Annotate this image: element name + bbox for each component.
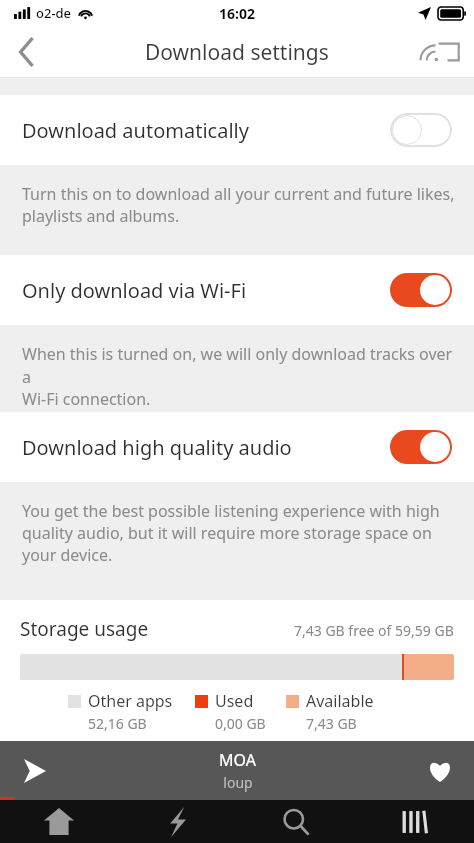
button[interactable]: Feed [118,800,236,843]
staticText: Download high quality audio [22,434,390,461]
staticText: MOA [219,749,256,771]
staticText: 52,16 GB [88,714,147,733]
staticText: 7,43 GB free of 59,59 GB [294,621,454,640]
button[interactable] [390,273,452,307]
button[interactable]: Play [0,741,474,800]
button[interactable]: Download automatically [0,95,474,165]
staticText: Download automatically [22,117,390,144]
button[interactable]: Cast [420,26,474,78]
staticText: 7,43 GB [306,714,357,733]
staticText: quality audio, but it will require more … [22,522,432,544]
staticText: 16:02 [219,4,255,23]
button[interactable]: Play [18,754,52,788]
button[interactable] [390,430,452,464]
staticText: loup [223,773,253,792]
staticText: 0,00 GB [215,714,266,733]
button[interactable]: Library [355,800,474,843]
staticText: playlists and albums. [22,205,180,227]
button[interactable]: Only download via Wi-Fi [0,255,474,325]
staticText: your device. [22,544,113,566]
button[interactable]: Search [236,800,355,843]
staticText: Storage usage [20,616,149,642]
staticText: You get the best possible listening expe… [22,500,440,522]
staticText: Used [215,690,254,712]
button[interactable]: Back [0,26,54,78]
staticText: o2-de [36,4,72,22]
button[interactable]: Download high quality audio [0,412,474,482]
button[interactable] [390,113,452,147]
staticText: Other apps [88,690,173,712]
button[interactable]: Like [422,753,458,789]
staticText: Only download via Wi-Fi [22,277,390,304]
button[interactable]: Home [0,800,118,843]
staticText: Wi-Fi connection. [22,388,151,410]
staticText: Turn this on to download all your curren… [22,183,455,205]
staticText: Download settings [145,38,329,67]
staticText: Available [306,690,374,712]
staticText: When this is turned on, we will only dow… [22,343,456,388]
